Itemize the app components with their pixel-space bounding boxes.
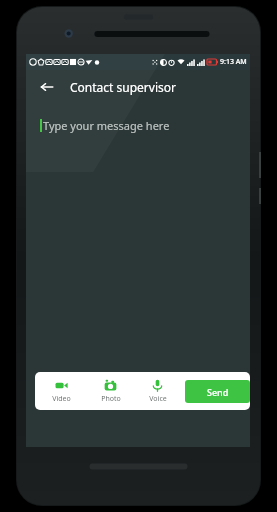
staticText: Photo xyxy=(101,394,121,404)
staticText: Type your message here xyxy=(43,118,170,133)
button[interactable]: Back xyxy=(34,74,60,100)
staticText: Voice xyxy=(149,394,167,404)
staticText: Send xyxy=(207,386,229,398)
button[interactable]: Type your message here xyxy=(40,118,170,133)
staticText: Contact supervisor xyxy=(70,79,176,95)
button[interactable]: Video xyxy=(35,372,87,410)
staticText: 9:13 AM xyxy=(220,57,247,67)
button[interactable]: Voice xyxy=(134,372,181,410)
button[interactable]: Photo xyxy=(87,372,134,410)
staticText: Video xyxy=(52,394,71,404)
button[interactable]: Send xyxy=(185,380,250,403)
